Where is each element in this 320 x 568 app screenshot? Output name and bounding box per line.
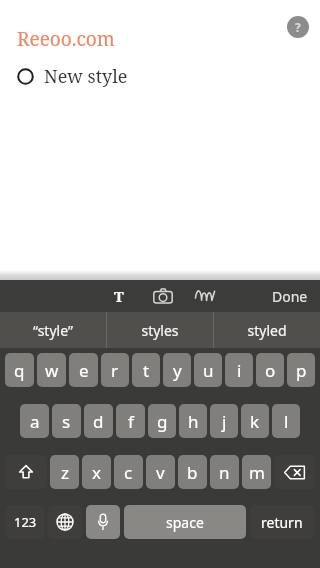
button[interactable]: Camera [148, 281, 178, 311]
staticText: x [92, 461, 101, 484]
button[interactable]: y [163, 353, 191, 387]
button[interactable]: b [178, 455, 207, 489]
staticText: z [61, 461, 69, 484]
button[interactable]: s [52, 404, 81, 438]
button[interactable]: t [132, 353, 160, 387]
staticText: s [62, 410, 71, 433]
button[interactable]: Shift [5, 455, 47, 489]
button[interactable]: return [250, 505, 314, 539]
staticText: k [250, 410, 260, 433]
staticText: v [156, 461, 165, 484]
button[interactable]: x [82, 455, 111, 489]
staticText: f [128, 410, 134, 433]
button[interactable]: m [242, 455, 271, 489]
staticText: space [166, 513, 204, 532]
button[interactable]: o [256, 353, 284, 387]
button[interactable]: f [116, 404, 145, 438]
staticText: u [203, 359, 214, 382]
button[interactable]: c [114, 455, 143, 489]
button[interactable]: l [272, 404, 300, 438]
staticText: y [173, 359, 182, 382]
staticText: r [111, 359, 119, 382]
staticText: j [222, 410, 227, 433]
staticText: d [93, 410, 104, 433]
staticText: g [157, 410, 168, 433]
staticText: w [45, 359, 59, 382]
staticText: 123 [14, 513, 37, 531]
button[interactable]: k [241, 404, 269, 438]
button[interactable]: n [210, 455, 239, 489]
staticText: “style” [33, 321, 73, 340]
button[interactable]: v [146, 455, 175, 489]
button[interactable]: styles [107, 312, 213, 348]
button[interactable]: j [210, 404, 238, 438]
button[interactable]: i [225, 353, 253, 387]
button[interactable]: New style [17, 64, 128, 89]
button[interactable]: z [50, 455, 79, 489]
staticText: t [143, 359, 150, 382]
staticText: e [79, 359, 89, 382]
button[interactable]: a [20, 404, 49, 438]
button[interactable]: “style” [0, 312, 106, 348]
button[interactable]: u [194, 353, 222, 387]
button[interactable]: Done [272, 280, 308, 312]
button[interactable]: Handwriting [190, 281, 220, 311]
staticText: styles [141, 321, 179, 340]
staticText: b [187, 461, 198, 484]
staticText: c [124, 461, 133, 484]
staticText: h [188, 410, 199, 433]
button[interactable]: p [287, 353, 315, 387]
staticText: m [249, 461, 265, 484]
button[interactable]: Change keyboard language [48, 505, 82, 539]
staticText: a [30, 410, 40, 433]
staticText: n [219, 461, 230, 484]
staticText: ? [295, 19, 301, 35]
staticText: Done [272, 287, 308, 306]
button[interactable]: 123 [6, 505, 44, 539]
button[interactable]: g [148, 404, 176, 438]
staticText: Reeoo.com [17, 26, 115, 52]
button[interactable]: q [5, 353, 34, 387]
staticText: New style [44, 64, 128, 89]
button[interactable]: w [37, 353, 66, 387]
button[interactable]: d [84, 404, 113, 438]
button[interactable]: h [179, 404, 207, 438]
button[interactable]: styled [214, 312, 320, 348]
staticText: T [114, 286, 124, 306]
button[interactable]: space [124, 505, 246, 539]
staticText: q [14, 359, 25, 382]
button[interactable]: Text format [104, 281, 134, 311]
button[interactable]: Voice input [86, 505, 120, 539]
staticText: l [284, 410, 289, 433]
button[interactable]: Backspace [274, 455, 315, 489]
staticText: i [237, 359, 242, 382]
staticText: styled [247, 321, 287, 340]
button[interactable]: e [69, 353, 98, 387]
button[interactable]: r [101, 353, 129, 387]
button[interactable]: Help [287, 16, 309, 38]
staticText: o [265, 359, 276, 382]
staticText: p [296, 359, 307, 382]
staticText: return [261, 513, 303, 532]
